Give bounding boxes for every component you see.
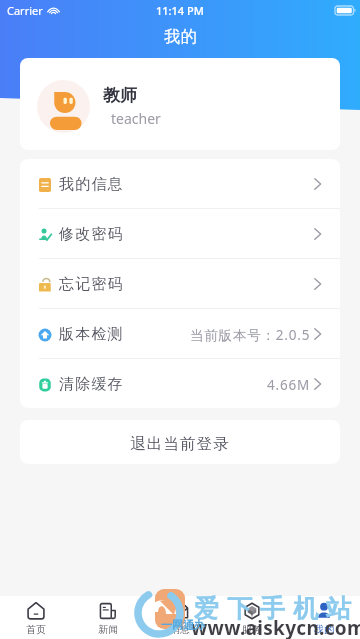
staticText: 忘记密码 [59, 275, 124, 294]
button[interactable]: 服务 [216, 596, 288, 639]
staticText: Carrier [7, 3, 43, 18]
button[interactable]: 版本检测 [20, 309, 340, 358]
staticText: 消息 [170, 623, 190, 636]
button[interactable]: 忘记密码 [20, 259, 340, 308]
staticText: 清除缓存 [59, 375, 124, 394]
button[interactable]: 新闻 [72, 596, 144, 639]
staticText: 一网通办 [161, 618, 205, 632]
staticText: 当前版本号：2.0.5 [190, 326, 311, 344]
button[interactable]: 我的信息 [20, 159, 340, 208]
staticText: www.aiskycn.com [191, 615, 360, 639]
staticText: 4.66M [267, 376, 311, 394]
button[interactable]: 清除缓存 [20, 359, 340, 408]
staticText: 新闻 [98, 623, 118, 636]
staticText: 教师 [103, 85, 137, 106]
button[interactable]: 首页 [0, 596, 72, 639]
button[interactable]: 教师 [20, 58, 340, 150]
staticText: 我的 [164, 27, 197, 47]
staticText: 服务 [242, 623, 262, 636]
button[interactable]: 修改密码 [20, 209, 340, 258]
staticText: 我的 [314, 623, 334, 636]
staticText: 首页 [26, 623, 46, 636]
staticText: 我的信息 [59, 175, 124, 194]
staticText: teacher [111, 109, 161, 128]
button[interactable]: 我的 [288, 596, 360, 639]
staticText: 修改密码 [59, 225, 124, 244]
staticText: 版本检测 [59, 325, 124, 344]
staticText: 11:14 PM [156, 3, 204, 18]
button[interactable]: 消息 [144, 596, 216, 639]
staticText: 退出当前登录 [130, 434, 230, 454]
staticText: 爱下手机站 [190, 593, 355, 624]
button[interactable]: 退出当前登录 [20, 420, 340, 464]
